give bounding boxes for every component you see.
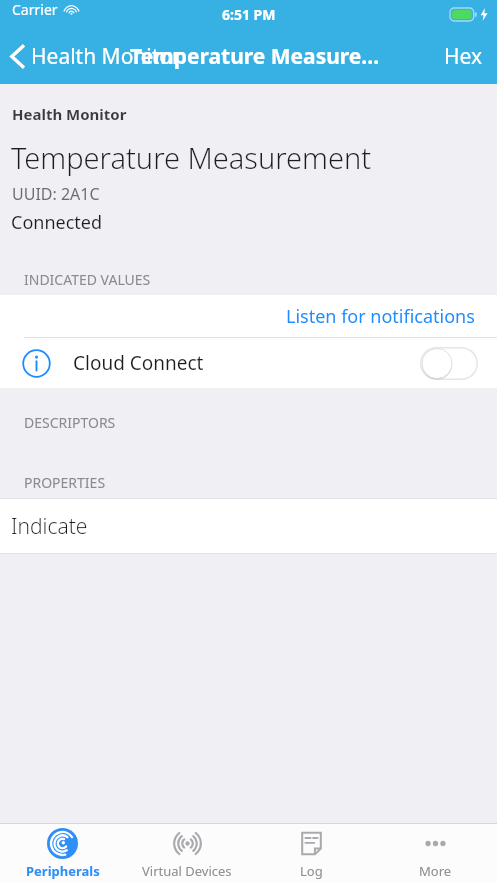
staticText: Cloud Connect [73,350,204,376]
staticText: Peripherals [26,862,100,880]
staticText: Listen for notifications [286,304,475,329]
staticText: Health Monitor [31,42,181,71]
staticText: Temperature Measure... [130,42,380,71]
staticText: 6:51 PM [222,5,276,24]
staticText: Connected [11,210,103,235]
button[interactable]: Indicate [0,499,497,553]
staticText: Log [300,862,323,880]
button[interactable]: Info [0,338,497,388]
staticText: Temperature Measurement [11,138,372,177]
button[interactable]: Hex [444,42,483,71]
staticText: UUID: 2A1C [12,183,100,205]
staticText: Health Monitor [12,104,127,124]
staticText: Hex [444,42,483,71]
staticText: PROPERTIES [24,473,106,492]
staticText: Indicate [11,512,88,541]
button[interactable]: Peripherals [0,824,125,883]
button[interactable]: Cloud Connect toggle [420,347,478,380]
button[interactable]: More [373,824,497,883]
staticText: More [419,862,452,880]
staticText: DESCRIPTORS [24,413,116,432]
staticText: INDICATED VALUES [24,270,151,289]
button[interactable]: Log [249,824,373,883]
staticText: Carrier [12,0,58,19]
button[interactable]: Listen for notifications [0,295,497,337]
staticText: Virtual Devices [142,862,232,880]
button[interactable]: Health Monitor [10,42,181,71]
button[interactable]: Info [22,349,51,378]
button[interactable]: Virtual Devices [125,824,249,883]
